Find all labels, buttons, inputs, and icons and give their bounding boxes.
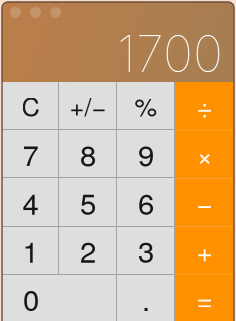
button[interactable]: 3 xyxy=(117,227,175,275)
staticText: 0 xyxy=(23,277,39,319)
button[interactable]: + xyxy=(175,227,234,275)
staticText: ÷ xyxy=(196,86,212,126)
staticText: . xyxy=(142,277,150,319)
button[interactable]: . xyxy=(117,275,175,321)
button[interactable]: 8 xyxy=(59,130,117,178)
button[interactable]: % xyxy=(117,82,175,130)
staticText: + xyxy=(196,230,212,270)
button[interactable]: 2 xyxy=(59,227,117,275)
button[interactable]: +/− xyxy=(59,82,117,130)
button[interactable]: 5 xyxy=(59,178,117,227)
button[interactable]: 6 xyxy=(117,178,175,227)
button[interactable]: = xyxy=(175,275,234,321)
button[interactable]: 1 xyxy=(2,227,59,275)
staticText: 1700 xyxy=(117,23,223,84)
staticText: 6 xyxy=(138,181,154,223)
staticText: 2 xyxy=(80,229,96,271)
staticText: 3 xyxy=(138,229,154,271)
staticText: 1 xyxy=(22,229,38,271)
staticText: 8 xyxy=(80,133,96,175)
button[interactable]: C xyxy=(2,82,59,130)
staticText: × xyxy=(196,134,212,174)
staticText: % xyxy=(134,87,157,124)
staticText: 5 xyxy=(80,181,96,223)
staticText: 9 xyxy=(138,133,154,175)
button[interactable]: 4 xyxy=(2,178,59,227)
button[interactable]: ÷ xyxy=(175,82,234,130)
button[interactable]: × xyxy=(175,130,234,178)
button[interactable]: − xyxy=(175,178,234,227)
staticText: − xyxy=(196,182,212,222)
staticText: +/− xyxy=(69,87,106,124)
staticText: C xyxy=(21,87,39,124)
staticText: 4 xyxy=(22,181,38,223)
staticText: 7 xyxy=(22,133,38,175)
staticText: = xyxy=(196,278,212,318)
button[interactable]: 9 xyxy=(117,130,175,178)
button[interactable]: 0 xyxy=(2,275,117,321)
button[interactable]: 7 xyxy=(2,130,59,178)
